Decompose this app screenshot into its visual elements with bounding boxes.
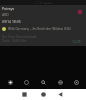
staticText: Potrays	[2, 6, 15, 11]
button[interactable]: Recents	[20, 90, 29, 99]
staticText: Doku 18:05 Uhr	[2, 39, 27, 43]
staticText: Wild Germany – Im Reich der Wildnis (3/4…	[8, 27, 71, 31]
staticText: 11:06 ▪ ▪ ▪	[35, 1, 52, 5]
button[interactable]: Home	[3, 75, 17, 89]
staticText: Die Tiere Deutschlands	[2, 35, 37, 39]
button[interactable]: Search	[36, 75, 50, 89]
staticText: ARD	[2, 12, 9, 17]
staticText: 12:35	[72, 39, 81, 44]
button[interactable]: Back	[56, 90, 65, 99]
button[interactable]: Live TV	[19, 75, 33, 89]
button[interactable]: Home	[39, 90, 48, 99]
button[interactable]: Record	[76, 7, 84, 15]
button[interactable]: Recordings	[69, 75, 83, 89]
button[interactable]: Browse	[53, 75, 67, 89]
staticText: 09/14 18:05	[2, 19, 21, 24]
